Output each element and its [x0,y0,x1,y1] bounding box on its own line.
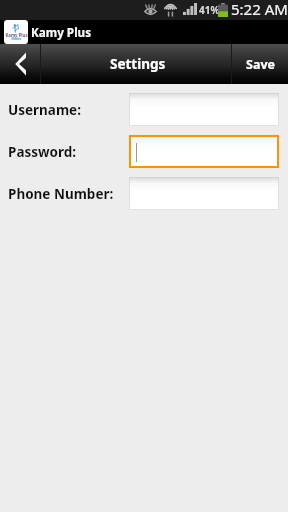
button[interactable]: Save [232,44,288,84]
staticText: 5:22 AM [231,0,288,19]
staticText: Kamy Plus [31,24,92,40]
staticText: Password: [8,143,77,161]
staticText: Settings [110,55,166,73]
staticText: Dialer [11,36,22,41]
staticText: Phone Number: [8,185,114,203]
button[interactable]: Back [0,44,41,84]
staticText: Save [246,56,275,73]
staticText: Kamy Plus [5,32,28,38]
staticText: Username: [8,101,81,119]
staticText: 41% [199,3,220,17]
button[interactable] [130,94,278,125]
button[interactable] [131,137,277,166]
button[interactable] [130,178,278,209]
